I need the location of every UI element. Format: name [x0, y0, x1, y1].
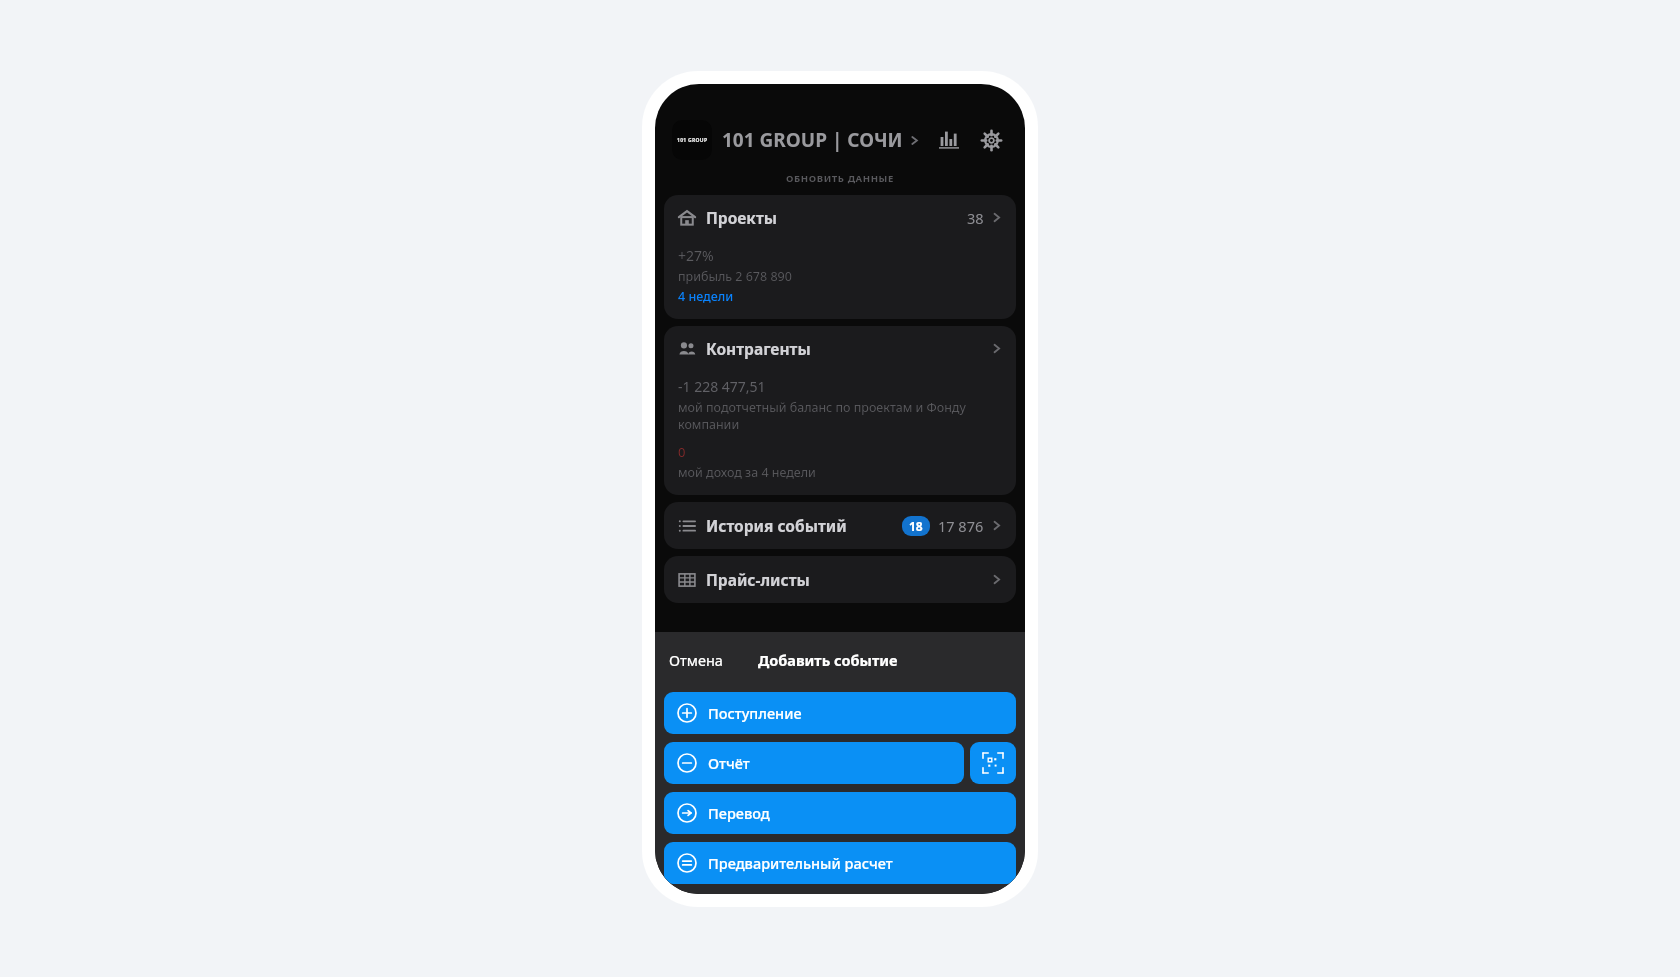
button[interactable]: Прайс-листы	[664, 556, 1016, 603]
staticText: +27%	[678, 246, 714, 265]
button[interactable]: Отчёт	[664, 742, 964, 784]
button[interactable]: Перевод	[664, 792, 1016, 834]
staticText: Поступление	[708, 703, 802, 723]
button[interactable]: Отмена	[664, 646, 728, 674]
staticText: 17 876	[938, 516, 984, 536]
staticText: 0	[678, 443, 686, 461]
button[interactable]: Settings	[974, 123, 1008, 157]
button[interactable]: 101 GROUP	[672, 120, 932, 160]
staticText: мой доход за 4 недели	[678, 464, 816, 481]
button[interactable]: Контрагенты	[664, 326, 1016, 371]
staticText: 101 GROUP | СОЧИ	[722, 127, 903, 153]
button[interactable]: Предварительный расчет	[664, 842, 1016, 884]
staticText: Отчёт	[708, 753, 750, 773]
button[interactable]: Проекты	[664, 195, 1016, 240]
staticText: Перевод	[708, 803, 770, 823]
button[interactable]: История событий	[664, 502, 1016, 549]
button[interactable]: 4 недели	[678, 288, 734, 305]
staticText: 18	[909, 518, 923, 534]
button[interactable]: ОБНОВИТЬ ДАННЫЕ	[655, 172, 1025, 185]
staticText: Предварительный расчет	[708, 853, 893, 873]
staticText: мой подотчетный баланс по проектам и Фон…	[678, 399, 1002, 432]
staticText: Добавить событие	[758, 650, 898, 670]
button[interactable]: Scan QR code	[970, 742, 1016, 784]
staticText: прибыль 2 678 890	[678, 268, 792, 285]
staticText: ОБНОВИТЬ ДАННЫЕ	[786, 172, 894, 185]
staticText: -1 228 477,51	[678, 377, 766, 396]
staticText: 38	[967, 208, 984, 228]
staticText: 101 GROUP	[677, 137, 708, 144]
button[interactable]: Поступление	[664, 692, 1016, 734]
staticText: Контрагенты	[706, 338, 991, 359]
staticText: Прайс-листы	[706, 569, 991, 590]
button[interactable]: Statistics	[932, 123, 966, 157]
staticText: Отмена	[669, 650, 723, 670]
staticText: История событий	[706, 515, 902, 536]
staticText: Проекты	[706, 207, 967, 228]
